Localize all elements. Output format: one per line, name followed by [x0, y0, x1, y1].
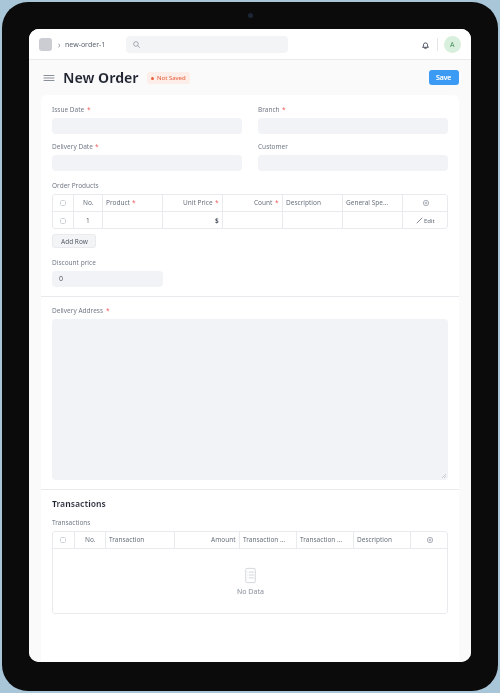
staticText: Edit	[424, 217, 435, 225]
button[interactable]: 0	[52, 271, 163, 287]
staticText: *	[282, 105, 286, 114]
staticText: *	[95, 142, 99, 151]
staticText: Amount	[211, 535, 236, 544]
button[interactable]: Select all	[52, 194, 73, 211]
button[interactable]: Select all	[52, 531, 74, 548]
staticText: 1	[86, 216, 90, 225]
staticText: new-order-1	[65, 40, 106, 50]
staticText: *	[87, 105, 91, 114]
staticText: Not Saved	[157, 74, 186, 82]
staticText: No.	[85, 535, 96, 544]
staticText: *	[215, 198, 219, 207]
staticText: A	[450, 40, 455, 50]
staticText: Transaction …	[300, 535, 343, 544]
button[interactable]: Not Saved	[151, 74, 186, 82]
staticText: Transaction …	[243, 535, 286, 544]
staticText: Transactions	[52, 518, 91, 527]
staticText: Order Products	[52, 181, 99, 190]
button[interactable]: App logo	[39, 38, 52, 51]
staticText: Description	[357, 535, 392, 544]
staticText: Transactions	[52, 498, 106, 510]
staticText: No.	[83, 198, 94, 207]
staticText: Product	[106, 198, 130, 207]
staticText: Count	[254, 198, 273, 207]
staticText: Delivery Address	[52, 306, 104, 315]
button[interactable]: Search	[126, 36, 288, 53]
button[interactable]: Column settings	[411, 531, 448, 548]
button[interactable]: Save	[429, 70, 459, 85]
button[interactable]: Column settings	[403, 194, 448, 211]
staticText: Discount price	[52, 258, 96, 267]
button[interactable]: Add Row	[52, 234, 96, 248]
staticText: Customer	[258, 142, 288, 151]
button[interactable]: Edit	[403, 212, 448, 229]
staticText: *	[275, 198, 279, 207]
staticText: General Spe…	[346, 198, 389, 207]
button[interactable]: Notifications	[417, 37, 433, 53]
staticText: Unit Price	[183, 198, 213, 207]
staticText: *	[132, 198, 136, 207]
staticText: 0	[59, 274, 64, 284]
button[interactable]: Account	[444, 36, 461, 53]
staticText: No Data	[237, 587, 264, 597]
staticText: ›	[58, 39, 61, 50]
button[interactable]: Select all	[52, 212, 73, 229]
staticText: Transaction	[109, 535, 145, 544]
button[interactable]: Menu	[41, 70, 57, 86]
staticText: New Order	[63, 68, 139, 87]
staticText: Branch	[258, 105, 280, 114]
staticText: Add Row	[61, 237, 88, 246]
staticText: Delivery Date	[52, 142, 93, 151]
staticText: Save	[436, 73, 452, 83]
staticText: *	[106, 306, 110, 315]
staticText: $	[215, 216, 219, 225]
staticText: Issue Date	[52, 105, 85, 114]
staticText: Description	[286, 198, 321, 207]
